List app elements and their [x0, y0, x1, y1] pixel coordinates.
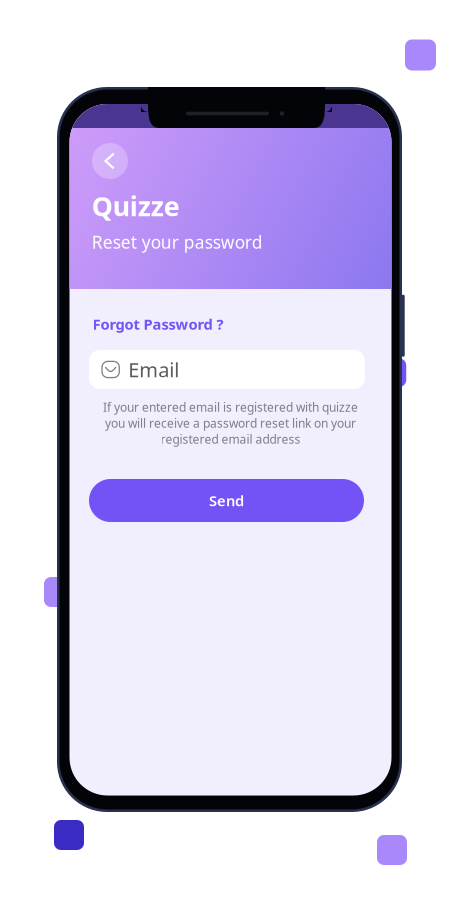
button[interactable]: Send: [89, 479, 364, 522]
button[interactable]: Email: [89, 350, 365, 389]
button[interactable]: Back: [92, 143, 128, 179]
staticText: Send: [209, 491, 244, 510]
staticText: Quizze: [92, 188, 180, 224]
staticText: Forgot Password ?: [92, 314, 223, 334]
staticText: registered email address: [160, 431, 300, 447]
staticText: Email: [128, 356, 179, 383]
staticText: If your entered email is registered with…: [103, 399, 358, 415]
staticText: you will receive a password reset link o…: [105, 415, 356, 431]
staticText: Reset your password: [92, 230, 263, 253]
